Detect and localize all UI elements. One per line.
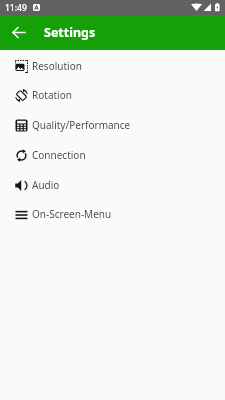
button[interactable]: Audio	[0, 170, 225, 200]
staticText: 11:49	[5, 2, 27, 14]
staticText: Rotation	[32, 88, 72, 102]
staticText: Connection	[32, 148, 86, 162]
button[interactable]: Rotation	[0, 80, 225, 110]
staticText: Settings	[44, 24, 96, 41]
button[interactable]: Quality/Performance	[0, 110, 225, 140]
staticText: Quality/Performance	[32, 118, 131, 132]
staticText: Audio	[32, 178, 60, 192]
staticText: Resolution	[32, 59, 82, 73]
button[interactable]: Back	[8, 22, 29, 43]
staticText: On-Screen-Menu	[32, 207, 112, 221]
button[interactable]: Resolution	[0, 51, 225, 81]
button[interactable]: On-Screen-Menu	[0, 199, 225, 229]
button[interactable]: Connection	[0, 140, 225, 170]
